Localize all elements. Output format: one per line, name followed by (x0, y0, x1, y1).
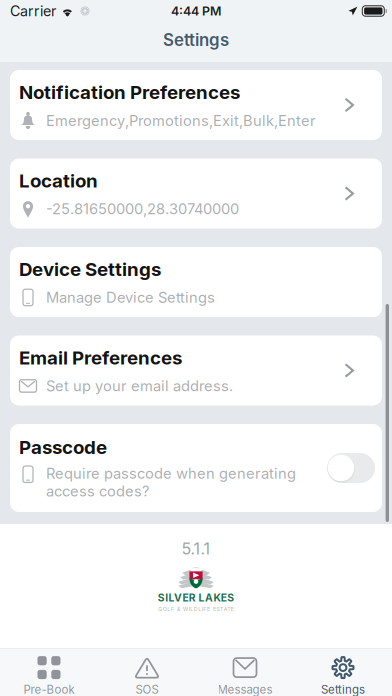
staticText: Set up your email address. (46, 377, 233, 395)
staticText: -25.81650000,28.30740000 (46, 200, 239, 218)
button[interactable]: Messages (196, 649, 294, 696)
button[interactable]: Device Settings (10, 247, 382, 317)
button[interactable]: Email Preferences (10, 335, 382, 405)
staticText: Emergency,Promotions,Exit,Bulk,Enter (46, 112, 316, 129)
staticText: Settings (321, 683, 365, 696)
button[interactable]: Settings (294, 649, 392, 696)
button[interactable]: Passcode (10, 424, 382, 512)
staticText: GOLF & WILDLIFE ESTATE (158, 606, 234, 612)
button[interactable]: SOS (98, 649, 196, 696)
staticText: Passcode (19, 436, 107, 459)
staticText: Location (19, 169, 98, 192)
staticText: 4:44 PM (171, 3, 221, 18)
staticText: Require passcode when generating access … (46, 464, 296, 500)
staticText: Email Preferences (19, 346, 182, 369)
staticText: Carrier (10, 2, 56, 20)
button[interactable]: Location (10, 158, 382, 228)
staticText: Device Settings (19, 258, 161, 281)
staticText: 5.1.1 (181, 539, 210, 558)
staticText: Messages (217, 683, 272, 696)
staticText: SILVER LAKES (158, 591, 234, 604)
staticText: Manage Device Settings (46, 289, 215, 306)
staticText: SOS (135, 683, 158, 696)
staticText: Pre-Book (23, 683, 74, 696)
button[interactable]: Notification Preferences (10, 70, 382, 140)
button[interactable]: Pre-Book (0, 649, 98, 696)
staticText: Settings (163, 30, 229, 50)
staticText: Notification Preferences (19, 81, 240, 104)
